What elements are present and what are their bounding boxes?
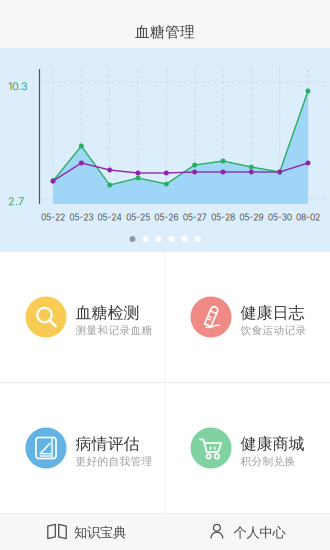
staticText: 健康日志 [240, 303, 304, 323]
staticText: 健康商城 [240, 434, 304, 454]
staticText: 05-28 [211, 212, 235, 222]
staticText: 积分制兑换 [240, 455, 295, 468]
staticText: 05-23 [69, 212, 93, 222]
button[interactable]: 血糖检测 [0, 252, 164, 382]
button[interactable]: 知识宝典 [4, 513, 169, 550]
button[interactable]: 健康商城 [165, 383, 329, 513]
staticText: 测量和记录血糖 [75, 324, 152, 337]
staticText: 05-26 [154, 212, 178, 222]
staticText: 05-22 [41, 212, 65, 222]
staticText: 血糖管理 [135, 23, 195, 41]
staticText: 05-25 [126, 212, 150, 222]
staticText: 知识宝典 [74, 524, 126, 541]
button[interactable]: 病情评估 [0, 383, 164, 513]
staticText: 个人中心 [233, 524, 285, 541]
staticText: 病情评估 [75, 434, 139, 454]
staticText: 饮食运动记录 [240, 324, 306, 337]
staticText: 更好的自我管理 [75, 455, 152, 468]
button[interactable]: 健康日志 [165, 252, 329, 382]
staticText: 血糖检测 [75, 303, 139, 323]
staticText: 08-02 [296, 212, 320, 222]
staticText: 05-30 [268, 212, 292, 222]
button[interactable]: 个人中心 [165, 513, 330, 550]
staticText: 2.7 [8, 195, 24, 208]
staticText: 05-24 [97, 212, 122, 222]
staticText: 10.3 [8, 80, 28, 93]
staticText: 05-27 [183, 212, 207, 222]
staticText: 05-29 [239, 212, 263, 222]
